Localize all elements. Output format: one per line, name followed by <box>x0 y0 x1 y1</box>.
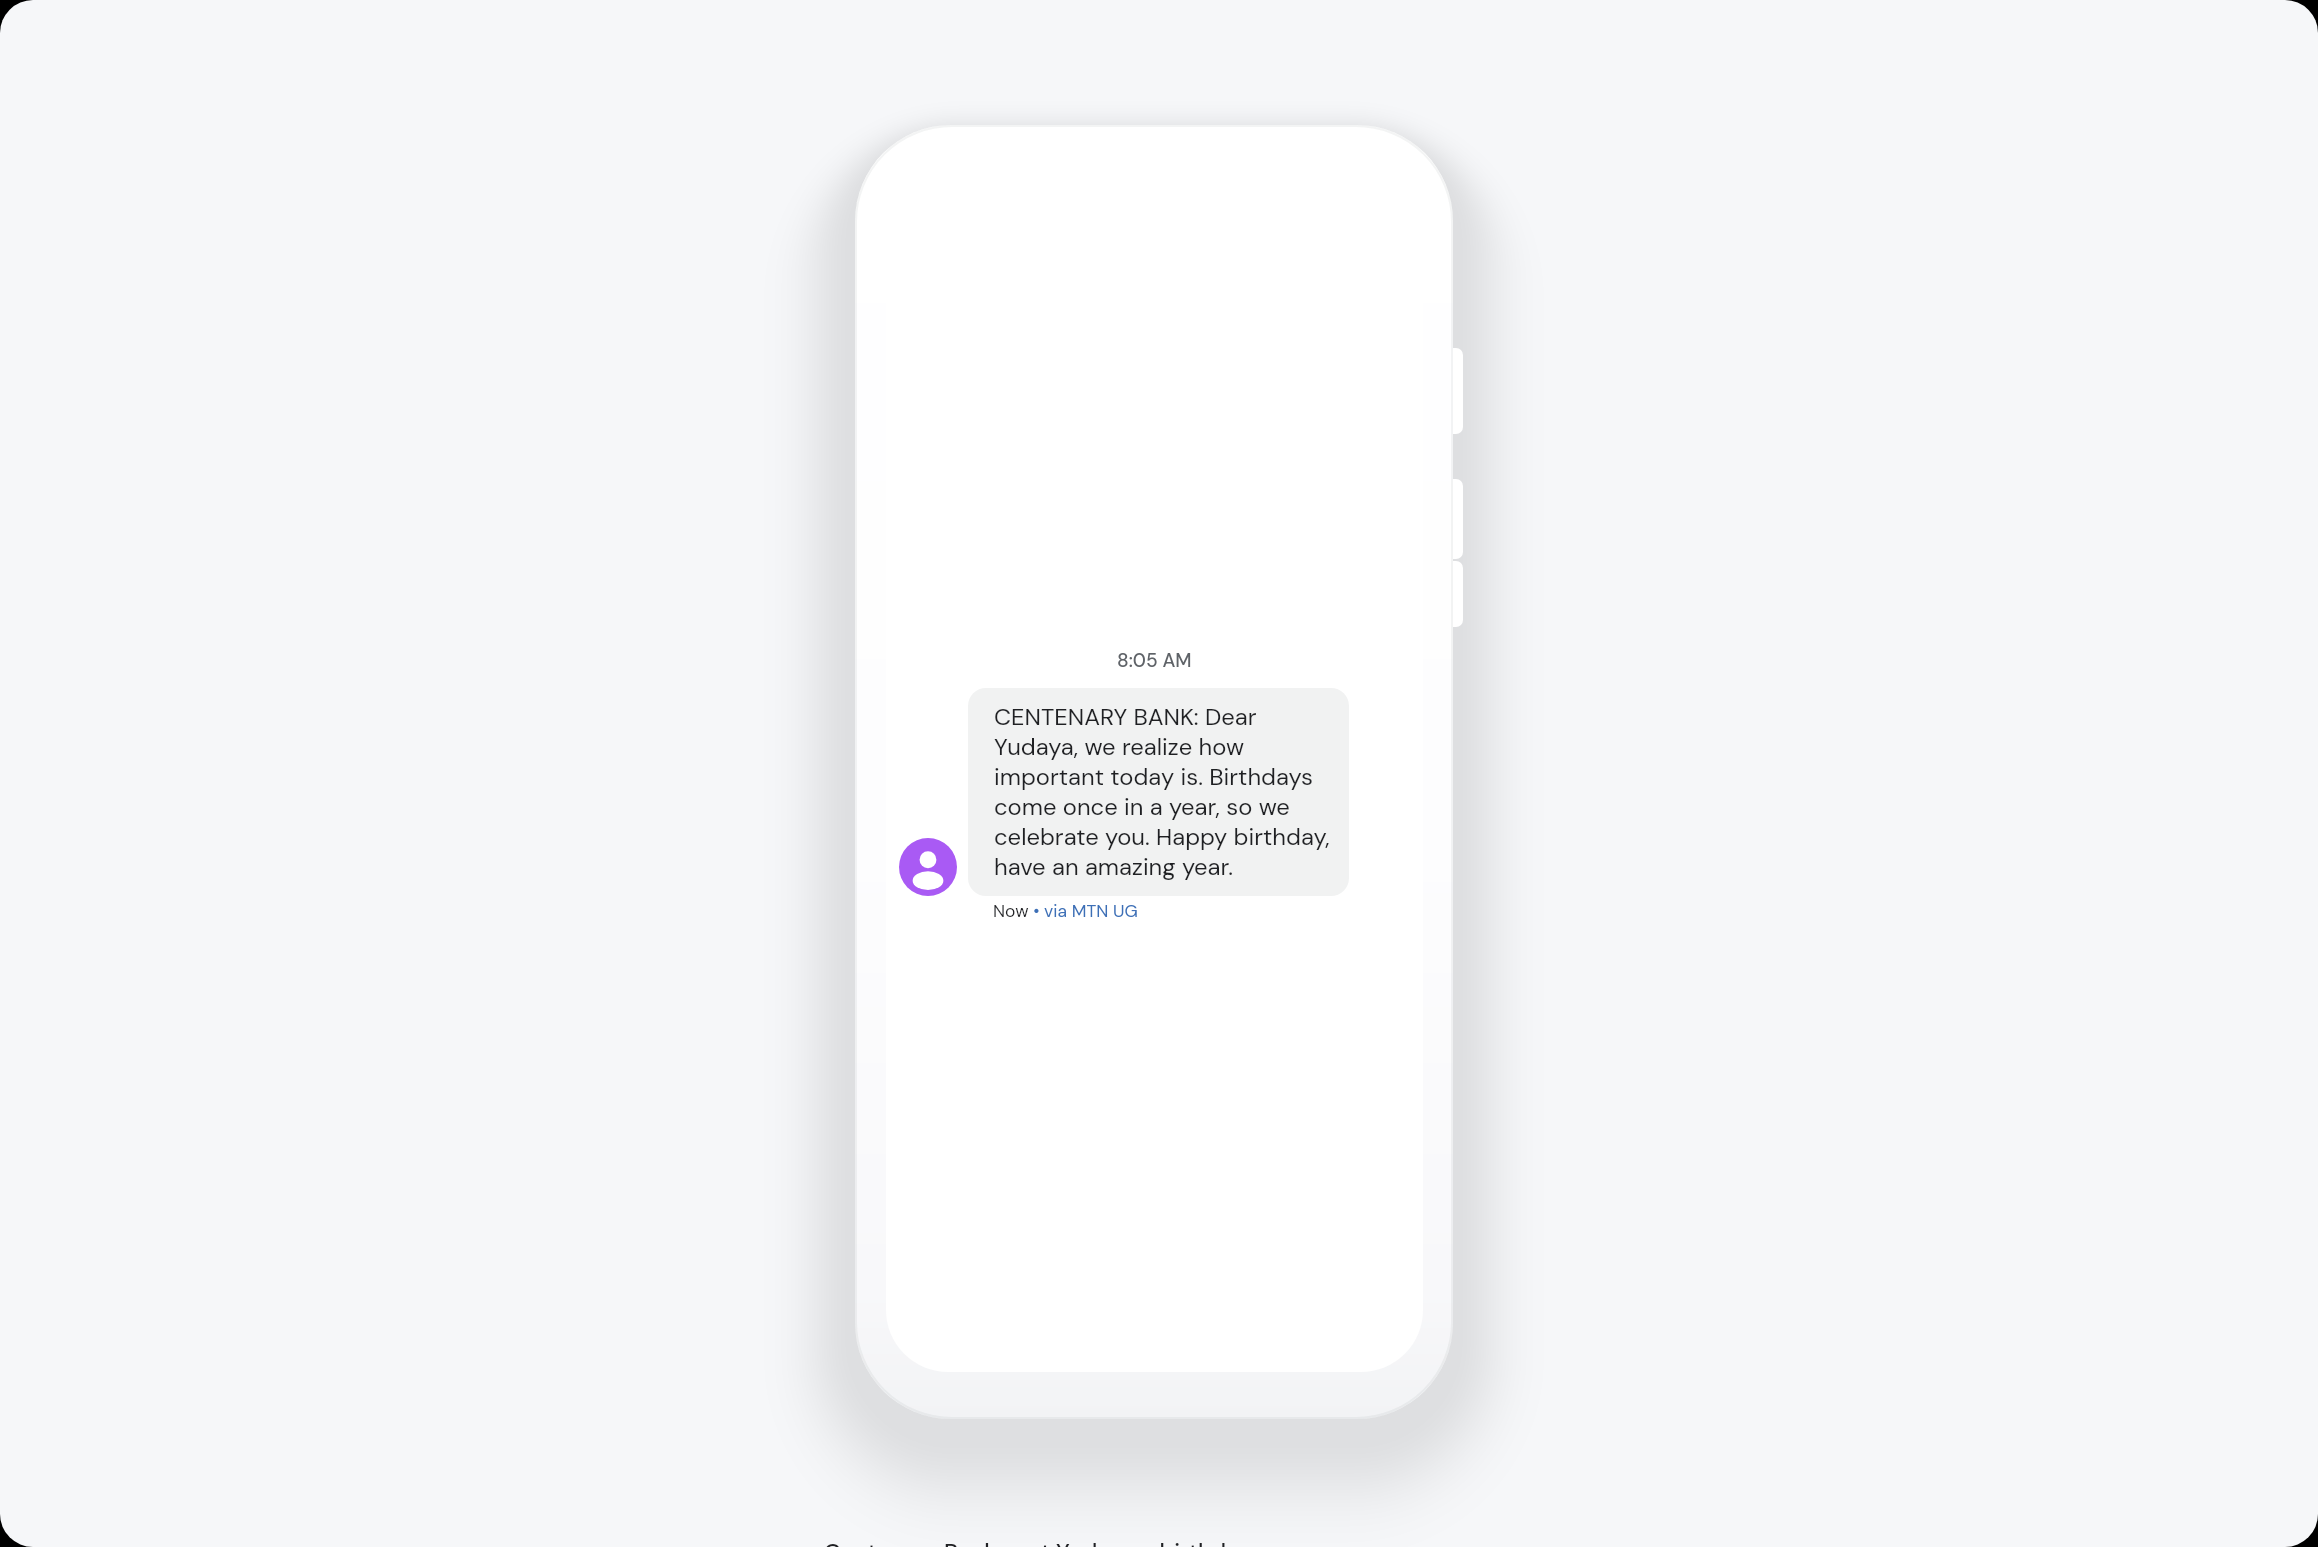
staticText: 8:05 AM <box>1117 648 1192 673</box>
staticText: Now • via MTN UG <box>993 900 1138 923</box>
button[interactable]: Mute switch <box>1438 348 1463 434</box>
button[interactable]: Contact avatar <box>899 838 957 896</box>
button[interactable]: Now • via MTN UG <box>993 900 1138 923</box>
staticText: Centenary Bank sent Yudaya a birthday me… <box>824 1537 1355 1547</box>
button[interactable]: CENTENARY BANK: Dear Yudaya, we realize … <box>968 688 1349 896</box>
button[interactable]: Centenary Bank sent Yudaya a birthday me… <box>824 1537 1355 1547</box>
button[interactable]: Volume down <box>1438 561 1463 627</box>
staticText: CENTENARY BANK: Dear Yudaya, we realize … <box>994 702 1337 882</box>
button[interactable]: Volume up <box>1438 479 1463 559</box>
